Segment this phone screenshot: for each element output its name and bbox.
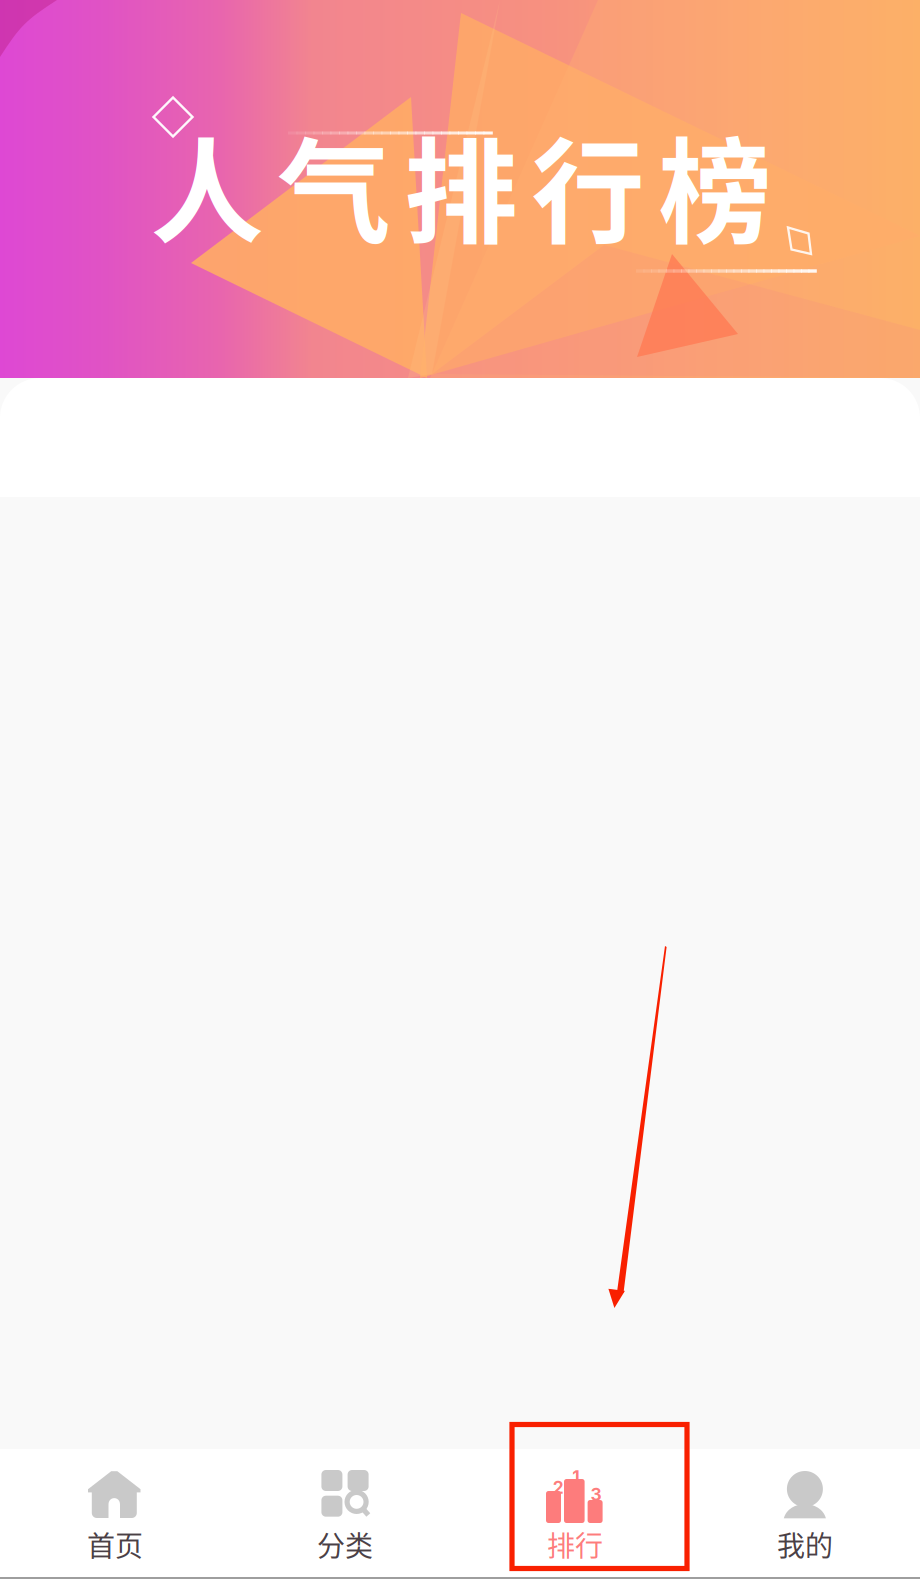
button[interactable]: 分类 — [230, 1449, 460, 1577]
staticText: 1 — [572, 1466, 579, 1487]
staticText: 人气排行榜 — [150, 102, 771, 266]
button[interactable]: 首页 — [0, 1449, 230, 1577]
staticText: 排行 — [547, 1524, 603, 1564]
staticText: 我的 — [777, 1524, 833, 1564]
staticText: 2 — [553, 1477, 564, 1498]
staticText: 分类 — [317, 1524, 373, 1564]
staticText: 3 — [590, 1484, 601, 1505]
staticText: 首页 — [87, 1524, 143, 1564]
button[interactable]: 2 — [460, 1449, 690, 1577]
button[interactable]: 我的 — [690, 1449, 920, 1577]
